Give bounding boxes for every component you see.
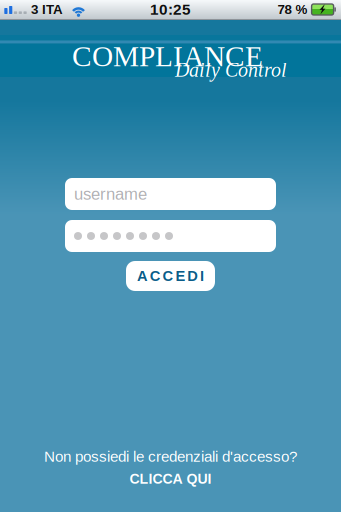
staticText: COMPLIANCE [72, 40, 263, 72]
staticText: 10:25 [150, 1, 191, 18]
staticText: Non possiedi le credenziali d'accesso? [44, 448, 297, 465]
staticText: 3 ITA [31, 2, 63, 17]
staticText: Daily Control [175, 59, 287, 81]
staticText: ACCEDI [137, 268, 204, 284]
staticText: CLICCA QUI [129, 471, 211, 487]
button[interactable]: ACCEDI [126, 261, 215, 291]
button[interactable]: CLICCA QUI [129, 471, 211, 487]
staticText: 78 % [278, 2, 308, 17]
staticText: username [74, 185, 147, 203]
